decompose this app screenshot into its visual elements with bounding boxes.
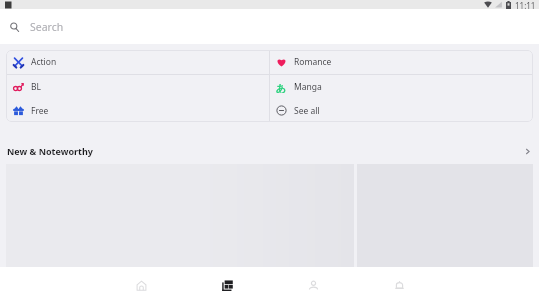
staticText: Romance [294, 56, 332, 68]
button[interactable]: Romance [269, 50, 533, 74]
button[interactable]: あ [269, 75, 533, 99]
button[interactable]: Free [6, 99, 269, 122]
button[interactable]: BL [6, 75, 269, 99]
staticText: BL [31, 81, 41, 93]
staticText: Search [30, 20, 64, 34]
staticText: Action [31, 56, 57, 68]
button[interactable]: Library [184, 267, 270, 301]
button[interactable]: Notifications [356, 267, 442, 301]
staticText: See all [294, 105, 320, 117]
staticText: Free [31, 105, 49, 117]
button[interactable]: Home [98, 267, 184, 301]
button[interactable]: New & Noteworthy [0, 143, 539, 159]
button[interactable]: See all [269, 99, 533, 122]
staticText: 11:11 [515, 0, 536, 9]
staticText: New & Noteworthy [7, 145, 93, 157]
button[interactable]: Action [6, 50, 269, 74]
staticText: Manga [294, 81, 322, 93]
staticText: あ [276, 82, 287, 93]
